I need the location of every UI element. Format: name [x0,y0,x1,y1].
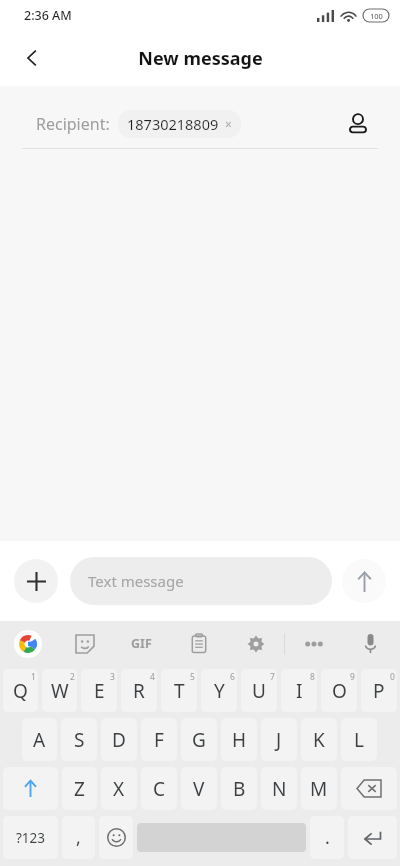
button[interactable]: Stickers [56,621,113,666]
button[interactable]: V [181,767,217,810]
button[interactable]: Enter [348,816,397,859]
staticText: A [33,727,46,753]
staticText: 6 [230,671,235,683]
button[interactable]: J [261,718,297,761]
button[interactable]: , [62,816,95,859]
staticText: Z [74,776,85,802]
button[interactable]: Send [342,559,386,603]
button[interactable]: Emoji [99,816,133,859]
button[interactable]: O [321,669,357,712]
button[interactable]: Shift [3,767,58,810]
button[interactable]: GIF [113,621,170,666]
button[interactable]: Back [8,34,56,82]
staticText: GIF [131,635,152,652]
staticText: ?123 [16,829,46,847]
button[interactable]: ?123 [3,816,58,859]
staticText: H [232,727,247,753]
staticText: S [74,727,85,753]
staticText: N [272,776,287,802]
staticText: 8 [310,671,315,683]
staticText: F [154,727,164,753]
button[interactable]: Clipboard [170,621,227,666]
staticText: Text message [88,571,184,591]
staticText: W [51,678,69,704]
button[interactable]: L [341,718,377,761]
button[interactable]: A [22,718,57,761]
button[interactable]: Google [0,621,56,666]
staticText: 18730218809 [127,114,219,134]
staticText: U [252,678,266,704]
staticText: , [76,825,81,850]
staticText: T [174,678,185,704]
button[interactable]: Y [201,669,237,712]
button[interactable]: Settings [227,621,284,666]
button[interactable]: S [61,718,97,761]
staticText: 7 [270,671,275,683]
staticText: O [332,678,347,704]
button[interactable]: W [42,669,77,712]
staticText: Q [13,678,28,704]
staticText: K [313,727,325,753]
staticText: B [233,776,246,802]
staticText: New message [138,46,263,71]
staticText: Recipient: [36,113,110,135]
staticText: X [113,776,125,802]
button[interactable]: D [101,718,137,761]
button[interactable]: E [81,669,117,712]
staticText: 2 [70,671,75,683]
button[interactable]: Z [62,767,97,810]
button[interactable]: U [241,669,277,712]
button[interactable]: Q [3,669,38,712]
button[interactable]: R [121,669,157,712]
button[interactable]: X [101,767,137,810]
staticText: 1 [31,671,36,683]
staticText: E [94,678,105,704]
staticText: D [112,727,126,753]
staticText: . [325,825,330,850]
staticText: I [296,678,303,704]
button[interactable]: Attach [14,559,58,603]
button[interactable]: More options [285,621,342,666]
button[interactable]: F [141,718,177,761]
staticText: 9 [350,671,355,683]
staticText: × [225,116,232,132]
staticText: G [192,727,206,753]
button[interactable]: Text message [70,557,332,605]
staticText: M [310,776,328,802]
button[interactable]: Backspace [341,767,397,810]
staticText: C [153,776,166,802]
staticText: 5 [190,671,195,683]
button[interactable]: T [161,669,197,712]
staticText: L [354,727,364,753]
staticText: 0 [390,671,395,683]
staticText: 2:36 AM [24,7,72,24]
button[interactable]: Choose contact [338,104,378,144]
button[interactable]: I [281,669,317,712]
staticText: 3 [110,671,115,683]
button[interactable]: K [301,718,337,761]
button[interactable]: N [261,767,297,810]
button[interactable]: H [221,718,257,761]
button[interactable]: P [361,669,397,712]
staticText: J [276,727,282,753]
button[interactable]: Voice input [342,621,399,666]
button[interactable]: 18730218809 [118,110,241,138]
staticText: 4 [150,671,155,683]
button[interactable]: G [181,718,217,761]
staticText: 100 [370,11,383,21]
button[interactable]: M [301,767,337,810]
staticText: P [373,678,385,704]
button[interactable]: C [141,767,177,810]
staticText: V [193,776,205,802]
button[interactable]: . [310,816,344,859]
button[interactable]: B [221,767,257,810]
staticText: R [133,678,145,704]
staticText: Y [214,678,225,704]
